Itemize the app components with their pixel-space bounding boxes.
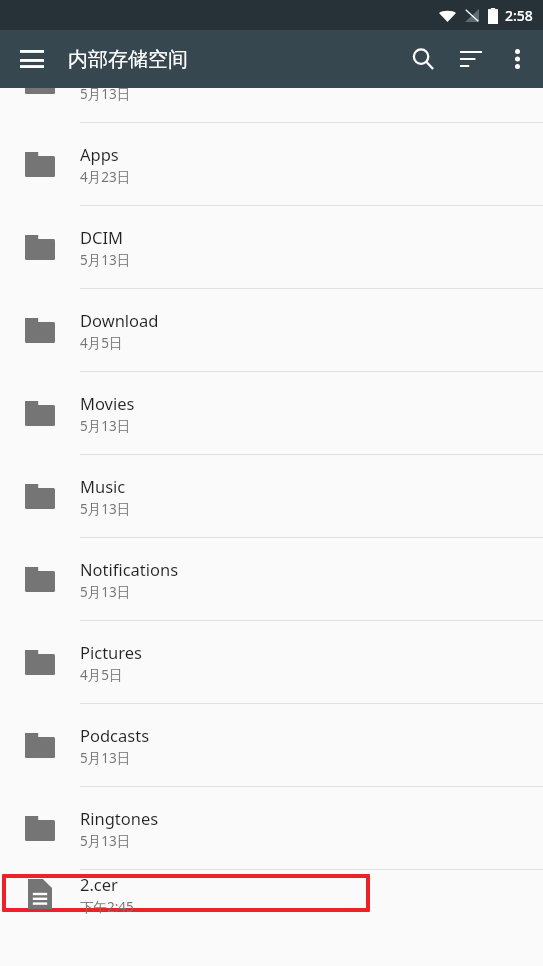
button[interactable] (6, 878, 366, 908)
button[interactable]: Music (0, 455, 543, 538)
staticText: 5月13日 (80, 88, 131, 103)
button[interactable]: Movies (0, 372, 543, 455)
button[interactable]: Apps (0, 123, 543, 206)
staticText: Music (80, 475, 126, 497)
staticText: Pictures (80, 641, 143, 663)
staticText: DCIM (80, 226, 124, 248)
button[interactable]: Sort (447, 35, 495, 83)
staticText: Movies (80, 392, 135, 414)
button[interactable]: Notifications (0, 538, 543, 621)
staticText: 5月13日 (80, 583, 131, 601)
button[interactable]: Ringtones (0, 787, 543, 870)
button[interactable]: DCIM (0, 206, 543, 289)
button[interactable]: Open navigation drawer (8, 35, 56, 83)
button[interactable]: Download (0, 289, 543, 372)
staticText: 2.cer (80, 873, 118, 895)
staticText: Ringtones (80, 807, 159, 829)
staticText: 5月13日 (80, 832, 131, 850)
staticText: 5月13日 (80, 749, 131, 767)
staticText: Download (80, 309, 159, 331)
staticText: 4月5日 (80, 334, 123, 352)
button[interactable]: Podcasts (0, 704, 543, 787)
staticText: 内部存储空间 (68, 47, 188, 72)
staticText: 5月13日 (80, 500, 131, 518)
staticText: 下午2:45 (80, 898, 134, 916)
staticText: 4月23日 (80, 168, 131, 186)
staticText: Podcasts (80, 724, 150, 746)
staticText: 2:58 (505, 6, 533, 25)
staticText: Notifications (80, 558, 179, 580)
staticText: Apps (80, 143, 119, 165)
button[interactable]: 2.cer (0, 870, 543, 918)
button[interactable]: Pictures (0, 621, 543, 704)
staticText: 4月5日 (80, 666, 123, 684)
button[interactable]: Alarms (0, 88, 543, 123)
button[interactable]: Search (399, 35, 447, 83)
button[interactable]: More options (495, 37, 539, 81)
staticText: 5月13日 (80, 417, 131, 435)
staticText: 5月13日 (80, 251, 131, 269)
